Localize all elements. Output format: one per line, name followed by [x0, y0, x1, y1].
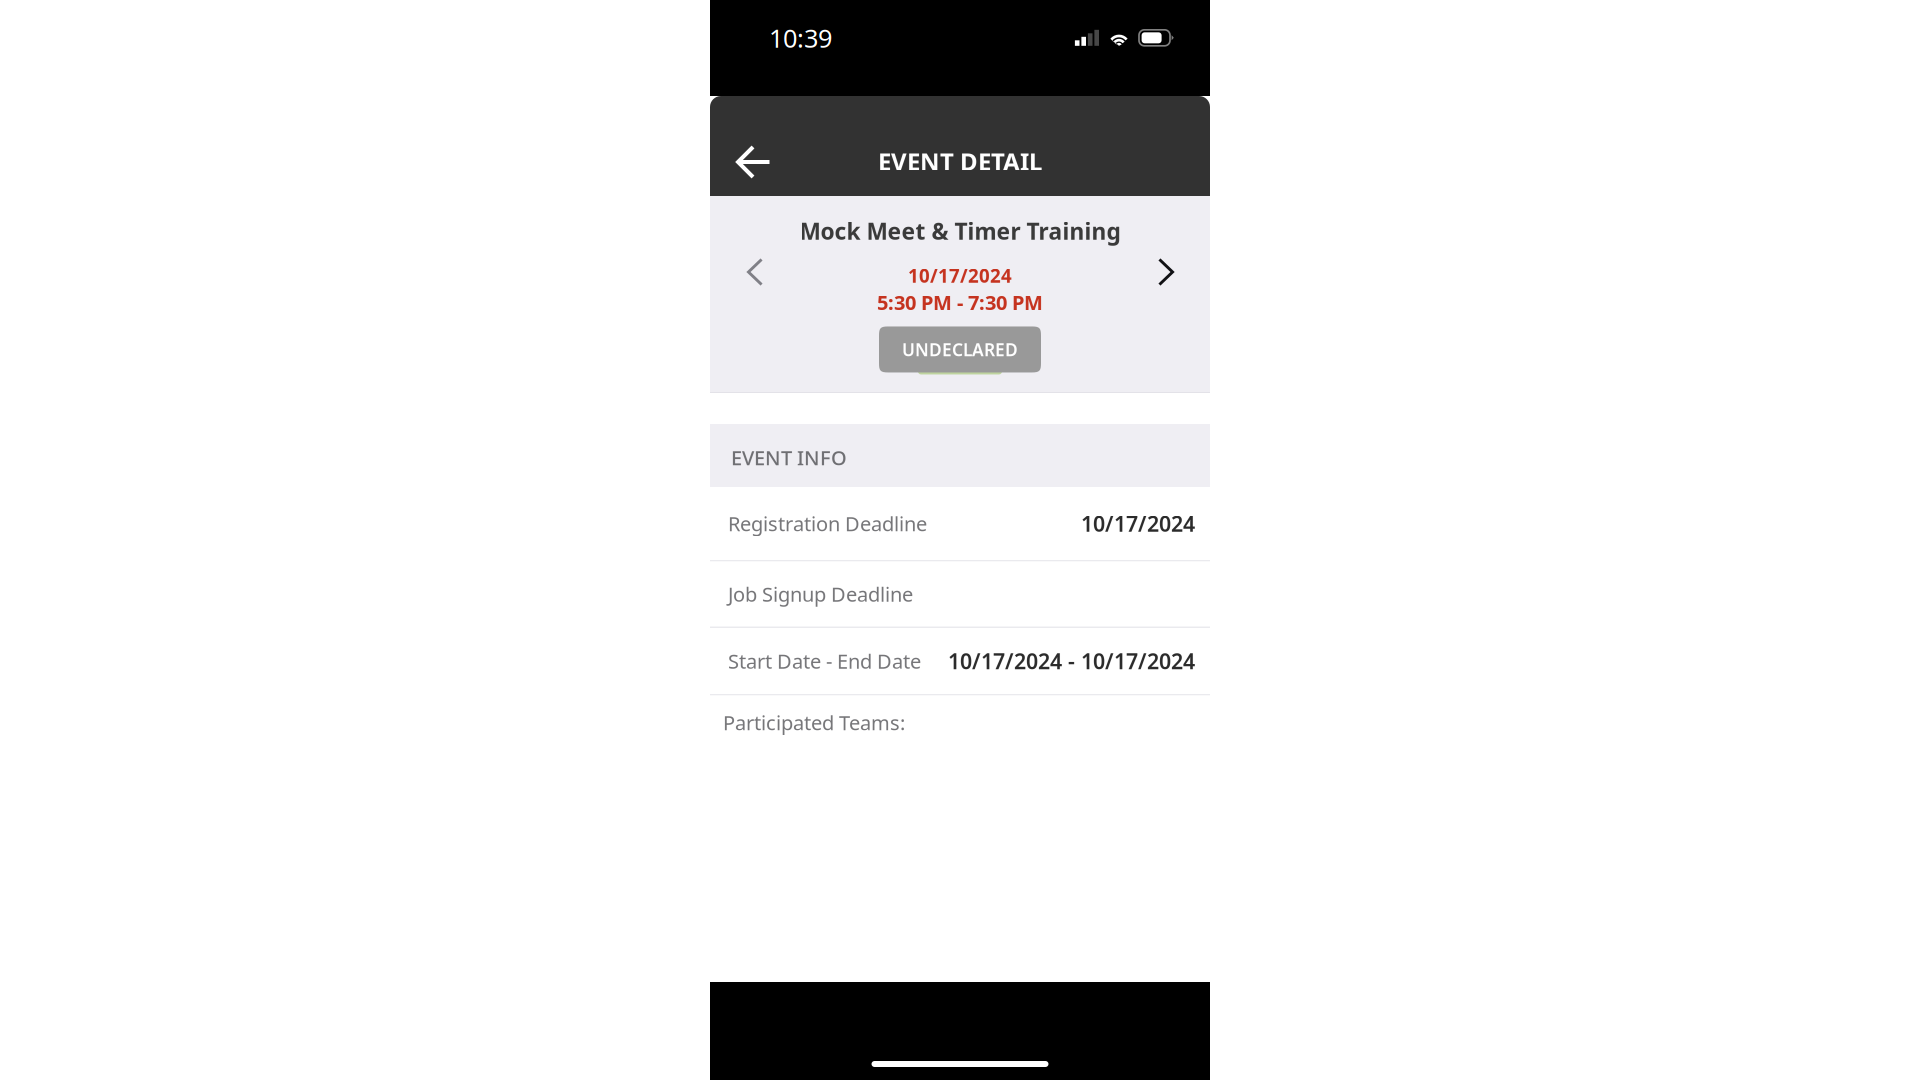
button[interactable]: UNDECLARED [879, 326, 1041, 372]
staticText: EVENT DETAIL [878, 145, 1042, 177]
staticText: EVENT INFO [731, 444, 847, 471]
button[interactable]: Next event [1142, 242, 1210, 302]
button[interactable]: Back [710, 111, 789, 181]
staticText: Job Signup Deadline [728, 581, 913, 607]
staticText: 10/17/2024 [1081, 509, 1195, 538]
button[interactable]: Job Signup Deadline [710, 561, 1210, 628]
staticText: 10/17/2024 - 10/17/2024 [948, 647, 1195, 675]
staticText: Participated Teams: [723, 709, 905, 736]
button[interactable]: Registration Deadline [710, 487, 1210, 561]
staticText: Mock Meet & Timer Training [799, 216, 1120, 246]
staticText: Start Date - End Date [728, 648, 921, 674]
staticText: UNDECLARED [902, 338, 1018, 361]
button[interactable]: Participated Teams: [710, 695, 1210, 749]
staticText: 10:39 [769, 21, 832, 55]
button[interactable]: Start Date - End Date [710, 628, 1210, 695]
staticText: 10/17/2024 [908, 263, 1012, 288]
button[interactable]: Previous event [710, 242, 779, 302]
staticText: 5:30 PM - 7:30 PM [877, 289, 1043, 315]
staticText: Registration Deadline [728, 510, 927, 537]
